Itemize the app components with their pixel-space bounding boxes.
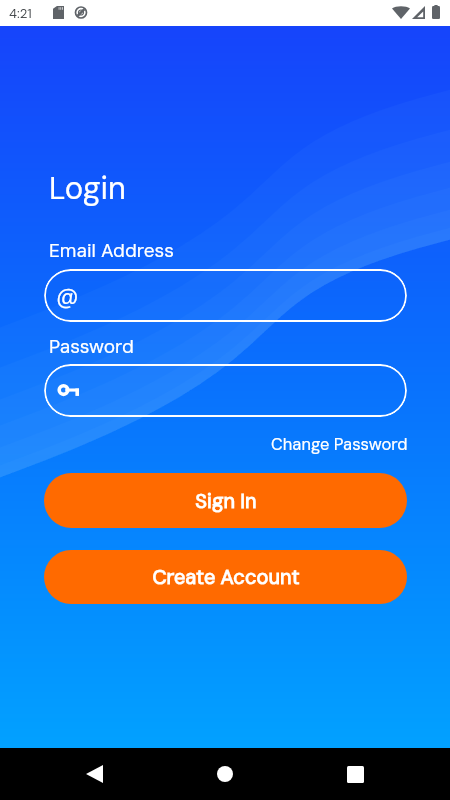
staticText: 4:21 bbox=[9, 5, 32, 22]
button[interactable]: Back bbox=[68, 748, 120, 800]
button[interactable]: Recent apps bbox=[329, 748, 381, 800]
button[interactable]: Create Account bbox=[44, 550, 407, 604]
staticText: Password bbox=[49, 334, 134, 359]
button[interactable]: Home bbox=[199, 748, 251, 800]
staticText: Sign In bbox=[195, 488, 257, 514]
button[interactable]: @ bbox=[44, 269, 407, 322]
staticText: Email Address bbox=[49, 238, 174, 263]
staticText: Login bbox=[49, 168, 126, 208]
staticText: @ bbox=[56, 281, 79, 311]
button[interactable]: Sign In bbox=[44, 473, 407, 528]
staticText: Change Password bbox=[271, 434, 408, 455]
staticText: Create Account bbox=[152, 564, 300, 590]
button[interactable] bbox=[44, 364, 407, 417]
button[interactable]: Change Password bbox=[266, 429, 413, 460]
